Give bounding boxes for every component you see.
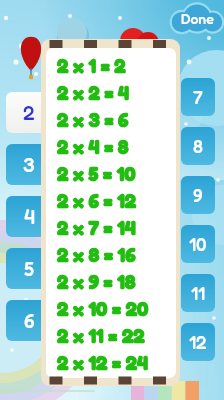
staticText: 2 x 4 = 8 — [57, 135, 129, 159]
staticText: 2 x 11 = 22 — [57, 324, 145, 348]
staticText: 12 — [189, 331, 207, 353]
button[interactable]: 3 — [6, 144, 52, 185]
staticText: Done — [181, 10, 214, 27]
staticText: 2 x 3 = 6 — [57, 108, 129, 132]
button[interactable]: Done — [170, 1, 224, 35]
button[interactable]: 11 — [181, 274, 215, 312]
staticText: 3 — [23, 153, 35, 177]
staticText: 11 — [191, 282, 205, 304]
button[interactable]: 4 — [6, 196, 52, 237]
staticText: 2 x 8 = 16 — [57, 243, 136, 267]
staticText: 2 — [23, 101, 35, 125]
button[interactable]: 8 — [181, 127, 215, 165]
staticText: 2 x 9 = 18 — [57, 270, 136, 294]
button[interactable]: 12 — [181, 323, 215, 361]
staticText: 9 — [193, 184, 203, 206]
button[interactable]: 2 — [6, 92, 52, 133]
staticText: 6 — [24, 309, 35, 333]
staticText: 2 x 2 = 4 — [57, 81, 130, 105]
staticText: 2 x 6 = 12 — [57, 189, 137, 213]
staticText: 2 x 10 = 20 — [57, 297, 149, 321]
staticText: 2 x 12 = 24 — [57, 351, 149, 375]
button[interactable]: 5 — [6, 248, 52, 289]
button[interactable]: 6 — [6, 300, 52, 341]
staticText: 10 — [189, 233, 207, 255]
staticText: 8 — [193, 135, 203, 157]
button[interactable]: 9 — [181, 176, 215, 214]
staticText: 4 — [24, 205, 35, 229]
staticText: 5 — [24, 257, 35, 281]
button[interactable]: 10 — [181, 225, 215, 263]
staticText: 7 — [193, 86, 203, 108]
staticText: 2 x 1 = 2 — [57, 54, 126, 78]
button[interactable]: 7 — [181, 78, 215, 116]
staticText: 2 x 5 = 10 — [57, 162, 136, 186]
staticText: 2 x 7 = 14 — [57, 216, 136, 240]
